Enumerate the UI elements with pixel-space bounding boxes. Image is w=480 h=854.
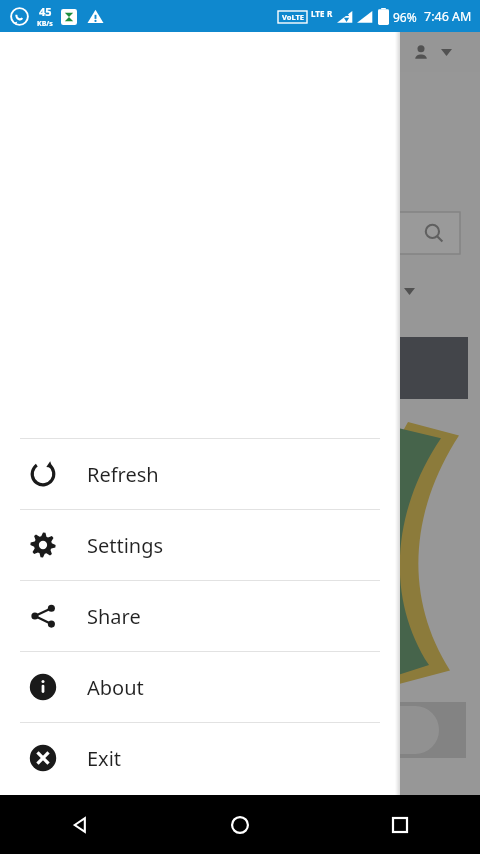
staticText: 45 [39, 4, 52, 19]
button[interactable]: Home [160, 795, 320, 854]
button[interactable]: About [0, 652, 400, 722]
staticText: KB/s [37, 19, 53, 29]
button[interactable]: Recent apps [320, 795, 480, 854]
staticText: Refresh [87, 461, 159, 488]
staticText: Exit [87, 745, 122, 772]
staticText: VoLTE [282, 12, 304, 22]
staticText: Empty [350, 280, 398, 302]
button[interactable]: Settings [0, 510, 400, 580]
button[interactable]: Exit [0, 723, 400, 793]
button[interactable]: Next [316, 702, 466, 758]
staticText: About [87, 674, 144, 701]
staticText: 7:46 AM [424, 8, 472, 25]
button[interactable]: Back [0, 795, 160, 854]
staticText: Settings [87, 532, 164, 559]
staticText: R [327, 8, 333, 19]
staticText: LTE [311, 8, 325, 19]
staticText: 96% [393, 9, 417, 25]
button[interactable]: Share [0, 581, 400, 651]
staticText: Share [87, 603, 141, 630]
button[interactable]: Refresh [0, 439, 400, 509]
